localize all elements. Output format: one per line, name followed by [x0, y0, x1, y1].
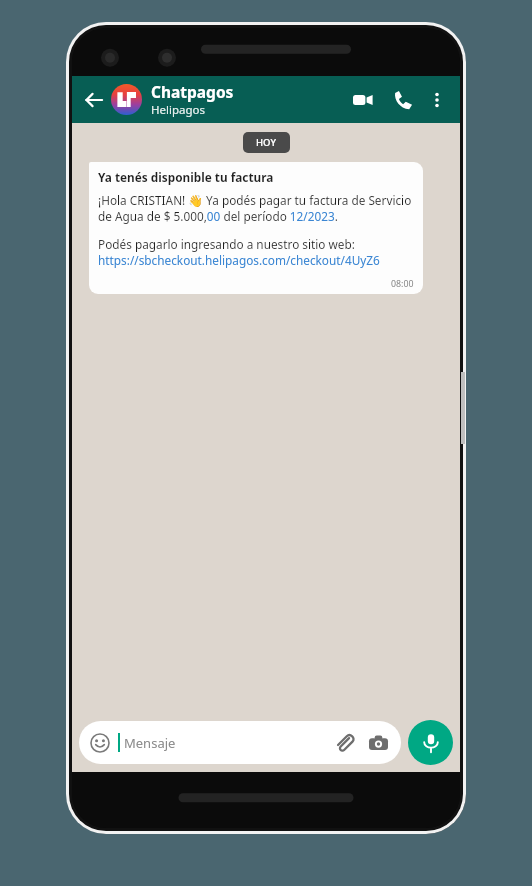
staticText: Podés pagarlo ingresando a nuestro sitio… [98, 236, 355, 252]
button[interactable]: https://sbcheckout.helipagos.com/checkou… [98, 252, 380, 268]
button[interactable]: Profile photo [111, 84, 142, 115]
staticText: Chatpagos [151, 81, 234, 102]
button[interactable]: Chatpagos [151, 81, 346, 118]
staticText: Ya tenés disponible tu factura [98, 169, 274, 185]
button[interactable]: Video call [346, 83, 380, 117]
staticText: HOY [256, 136, 277, 149]
button[interactable]: Back [80, 86, 108, 114]
button[interactable]: HOY [243, 132, 290, 153]
staticText: 08:00 [391, 278, 414, 290]
button[interactable]: Voice call [386, 83, 420, 117]
staticText: ¡Hola CRISTIAN! 👋 Ya podés pagar tu fact… [98, 192, 414, 224]
staticText: Mensaje [124, 734, 176, 752]
button[interactable]: Ya tenés disponible tu factura [89, 162, 423, 294]
button[interactable]: Emoji [89, 732, 111, 754]
staticText: Helipagos [151, 102, 206, 118]
button[interactable]: Emoji [79, 721, 401, 764]
button[interactable]: Attach [331, 730, 357, 756]
button[interactable]: Camera [365, 730, 391, 756]
button[interactable]: More options [422, 85, 452, 115]
button[interactable]: Record voice message [408, 720, 453, 765]
